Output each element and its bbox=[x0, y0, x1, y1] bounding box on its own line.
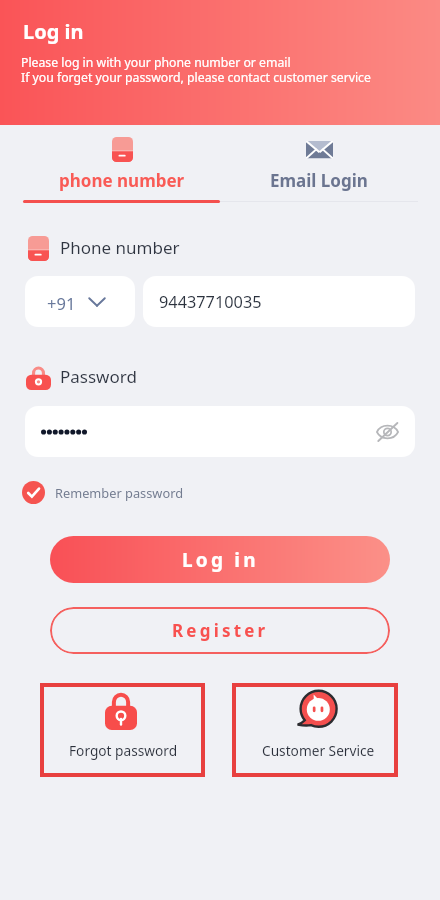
button[interactable]: +91 bbox=[25, 276, 135, 327]
button[interactable]: Show password bbox=[25, 406, 415, 457]
button[interactable]: 94437710035 bbox=[143, 276, 415, 327]
staticText: If you forget your password, please cont… bbox=[21, 69, 371, 86]
button[interactable]: Forgot password bbox=[40, 683, 205, 777]
staticText: Log in bbox=[23, 18, 84, 45]
button[interactable]: Log in bbox=[50, 536, 390, 583]
button[interactable]: Customer Service bbox=[232, 683, 398, 777]
staticText: Please log in with your phone number or … bbox=[21, 54, 291, 71]
staticText: Customer Service bbox=[262, 741, 375, 760]
staticText: +91 bbox=[47, 292, 76, 314]
staticText: Forgot password bbox=[69, 741, 178, 760]
staticText: 94437710035 bbox=[159, 291, 262, 313]
button[interactable]: Show password bbox=[371, 416, 403, 448]
staticText: Log in bbox=[182, 547, 259, 573]
staticText: Email Login bbox=[270, 169, 368, 192]
staticText: Phone number bbox=[60, 236, 180, 259]
staticText: Remember password bbox=[55, 484, 184, 501]
staticText: Register bbox=[172, 619, 269, 642]
staticText: phone number bbox=[59, 169, 185, 192]
staticText: Password bbox=[60, 365, 137, 388]
button[interactable]: Remember password bbox=[22, 479, 184, 505]
button[interactable]: Register bbox=[50, 607, 390, 654]
button[interactable]: Email Login bbox=[222, 137, 415, 204]
button[interactable]: phone number bbox=[23, 137, 221, 204]
